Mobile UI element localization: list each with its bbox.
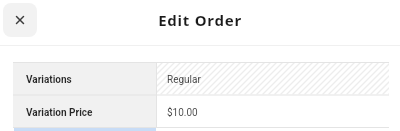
staticText: Regular — [167, 74, 201, 86]
staticText: $10.00 — [167, 107, 198, 119]
button[interactable]: Variation Price — [13, 95, 156, 128]
staticText: Edit Order — [158, 10, 242, 30]
staticText: Variations — [26, 74, 72, 86]
button[interactable]: Regular — [156, 62, 389, 95]
staticText: Variation Price — [26, 107, 93, 119]
button[interactable]: Close — [3, 3, 37, 37]
button[interactable]: $10.00 — [156, 95, 389, 128]
button[interactable]: Variations — [13, 62, 156, 95]
